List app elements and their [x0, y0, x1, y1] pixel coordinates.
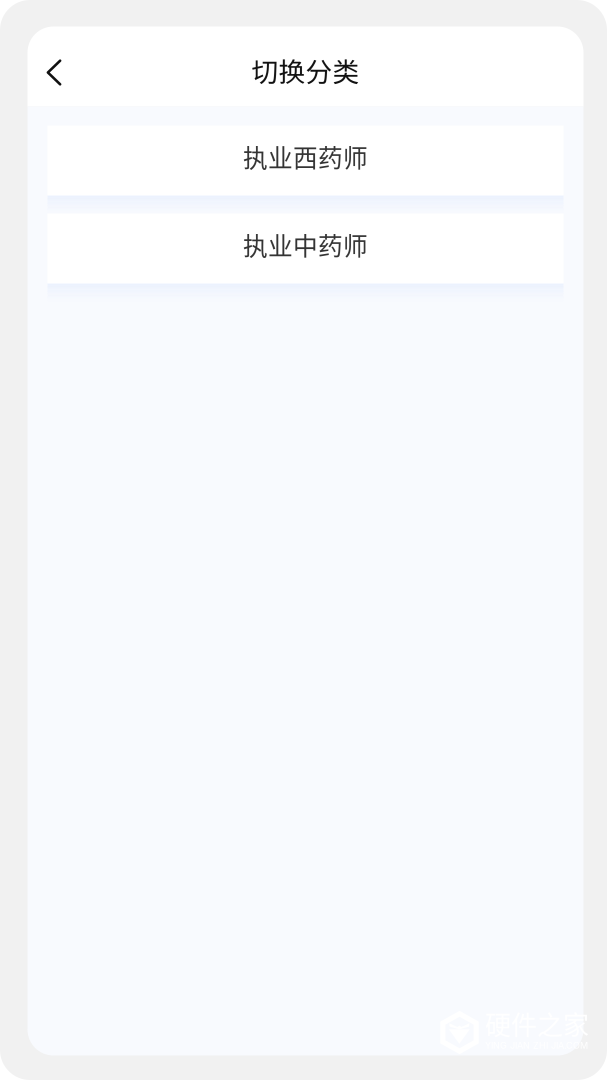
- button[interactable]: 执业中药师: [47, 213, 563, 283]
- button[interactable]: 执业西药师: [47, 125, 563, 195]
- staticText: 执业中药师: [243, 227, 368, 262]
- staticText: 执业西药师: [243, 139, 368, 174]
- button[interactable]: Back: [27, 26, 93, 106]
- staticText: YING JIAN ZHI JIA.COM: [485, 1040, 588, 1051]
- staticText: 切换分类: [251, 51, 359, 89]
